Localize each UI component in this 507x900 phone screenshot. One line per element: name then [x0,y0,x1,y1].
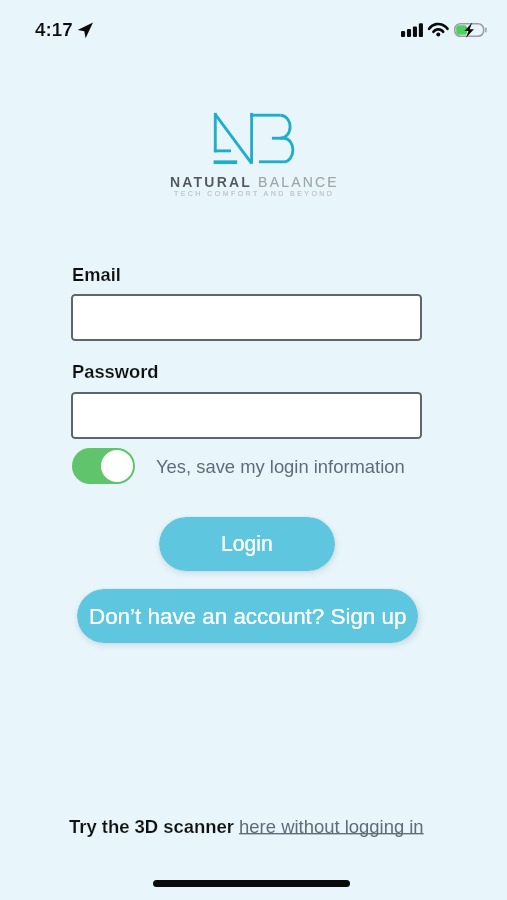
staticText: Yes, save my login information [156,456,405,477]
staticText: Email [72,264,121,284]
staticText: NATURAL BALANCE [170,174,339,190]
staticText: Password [72,361,159,381]
button[interactable]: Save login information toggle [72,448,135,484]
staticText: TECH COMFORT AND BEYOND [174,190,335,198]
button[interactable]: Text input [71,392,422,439]
staticText: Don’t have an account? Sign up [89,604,407,629]
button[interactable]: Text input [71,294,422,341]
staticText: 4:17 [35,19,73,40]
staticText: Login [221,532,273,556]
button[interactable]: Try the 3D scanner here without logging … [69,816,424,837]
button[interactable]: Login [159,517,335,571]
button[interactable]: Don’t have an account? Sign up [77,589,418,643]
